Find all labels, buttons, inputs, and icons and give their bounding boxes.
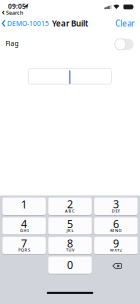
button[interactable]: Year Built value: [28, 69, 111, 84]
staticText: 2: [67, 197, 73, 211]
button[interactable]: 4: [2, 217, 46, 235]
button[interactable]: Search: [2, 9, 32, 16]
button[interactable]: 9: [94, 237, 138, 254]
staticText: 3: [113, 197, 119, 211]
staticText: PQRS: [18, 247, 30, 253]
staticText: DEF: [112, 208, 120, 213]
staticText: 6: [113, 217, 119, 231]
staticText: 8: [67, 236, 73, 250]
staticText: JKL: [66, 228, 74, 233]
button[interactable]: DEMO-10015: [2, 19, 62, 28]
staticText: Year Built: [52, 18, 88, 29]
staticText: GHI: [20, 228, 28, 233]
button[interactable]: 5: [48, 217, 92, 235]
button[interactable]: Flag: [114, 38, 133, 50]
staticText: Flag: [5, 39, 18, 48]
staticText: 7: [21, 236, 27, 250]
button[interactable]: 2: [48, 198, 92, 215]
button[interactable]: Clear: [104, 18, 134, 29]
staticText: 9: [113, 236, 119, 250]
staticText: ABC: [65, 208, 75, 213]
staticText: 5: [67, 217, 73, 231]
staticText: Search: [6, 9, 23, 16]
staticText: Clear: [115, 18, 134, 29]
staticText: WXYZ: [110, 247, 122, 253]
staticText: DEMO-10015: [7, 19, 49, 28]
button[interactable]: 7: [2, 237, 46, 254]
button[interactable]: Delete: [112, 263, 122, 269]
button[interactable]: 6: [94, 217, 138, 235]
staticText: 1: [21, 197, 27, 211]
staticText: 0: [67, 258, 73, 272]
button[interactable]: 1: [2, 198, 46, 215]
staticText: 09:05: [8, 2, 26, 11]
staticText: 4: [21, 217, 27, 231]
staticText: TUV: [66, 247, 74, 253]
button[interactable]: 3: [94, 198, 138, 215]
button[interactable]: 8: [48, 237, 92, 254]
staticText: MNO: [110, 228, 121, 233]
button[interactable]: 0: [48, 256, 92, 274]
